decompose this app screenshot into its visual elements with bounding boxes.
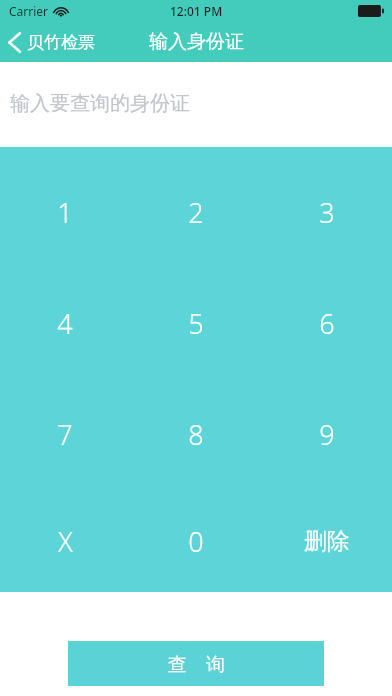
staticText: 0 — [188, 523, 204, 560]
staticText: 删除 — [304, 527, 350, 556]
button[interactable]: 5 — [130, 268, 261, 379]
button[interactable]: 输入要查询的身份证 — [0, 62, 392, 147]
staticText: 查 询 — [168, 651, 225, 677]
staticText: 12:01 PM — [170, 3, 223, 19]
staticText: 3 — [319, 194, 335, 231]
button[interactable]: 8 — [130, 379, 261, 490]
button[interactable]: X — [0, 490, 130, 592]
staticText: 8 — [188, 416, 204, 453]
button[interactable]: 6 — [261, 268, 392, 379]
button[interactable]: 9 — [261, 379, 392, 490]
staticText: X — [58, 523, 73, 560]
staticText: Carrier — [9, 3, 49, 19]
staticText: 输入要查询的身份证 — [10, 91, 190, 116]
button[interactable]: Back to 贝竹检票 — [0, 22, 107, 62]
staticText: 6 — [319, 305, 335, 342]
staticText: 9 — [319, 416, 335, 453]
staticText: 4 — [57, 305, 73, 342]
button[interactable]: 查 询 — [68, 641, 324, 686]
button[interactable]: 删除 — [261, 490, 392, 592]
button[interactable]: 1 — [0, 157, 130, 268]
staticText: 5 — [188, 305, 204, 342]
staticText: 贝竹检票 — [27, 32, 95, 53]
staticText: 2 — [188, 194, 204, 231]
staticText: 7 — [57, 416, 73, 453]
button[interactable]: 3 — [261, 157, 392, 268]
button[interactable]: 0 — [130, 490, 261, 592]
button[interactable]: 7 — [0, 379, 130, 490]
staticText: 输入身份证 — [149, 30, 244, 54]
button[interactable]: 4 — [0, 268, 130, 379]
staticText: 1 — [57, 194, 73, 231]
button[interactable]: 2 — [130, 157, 261, 268]
